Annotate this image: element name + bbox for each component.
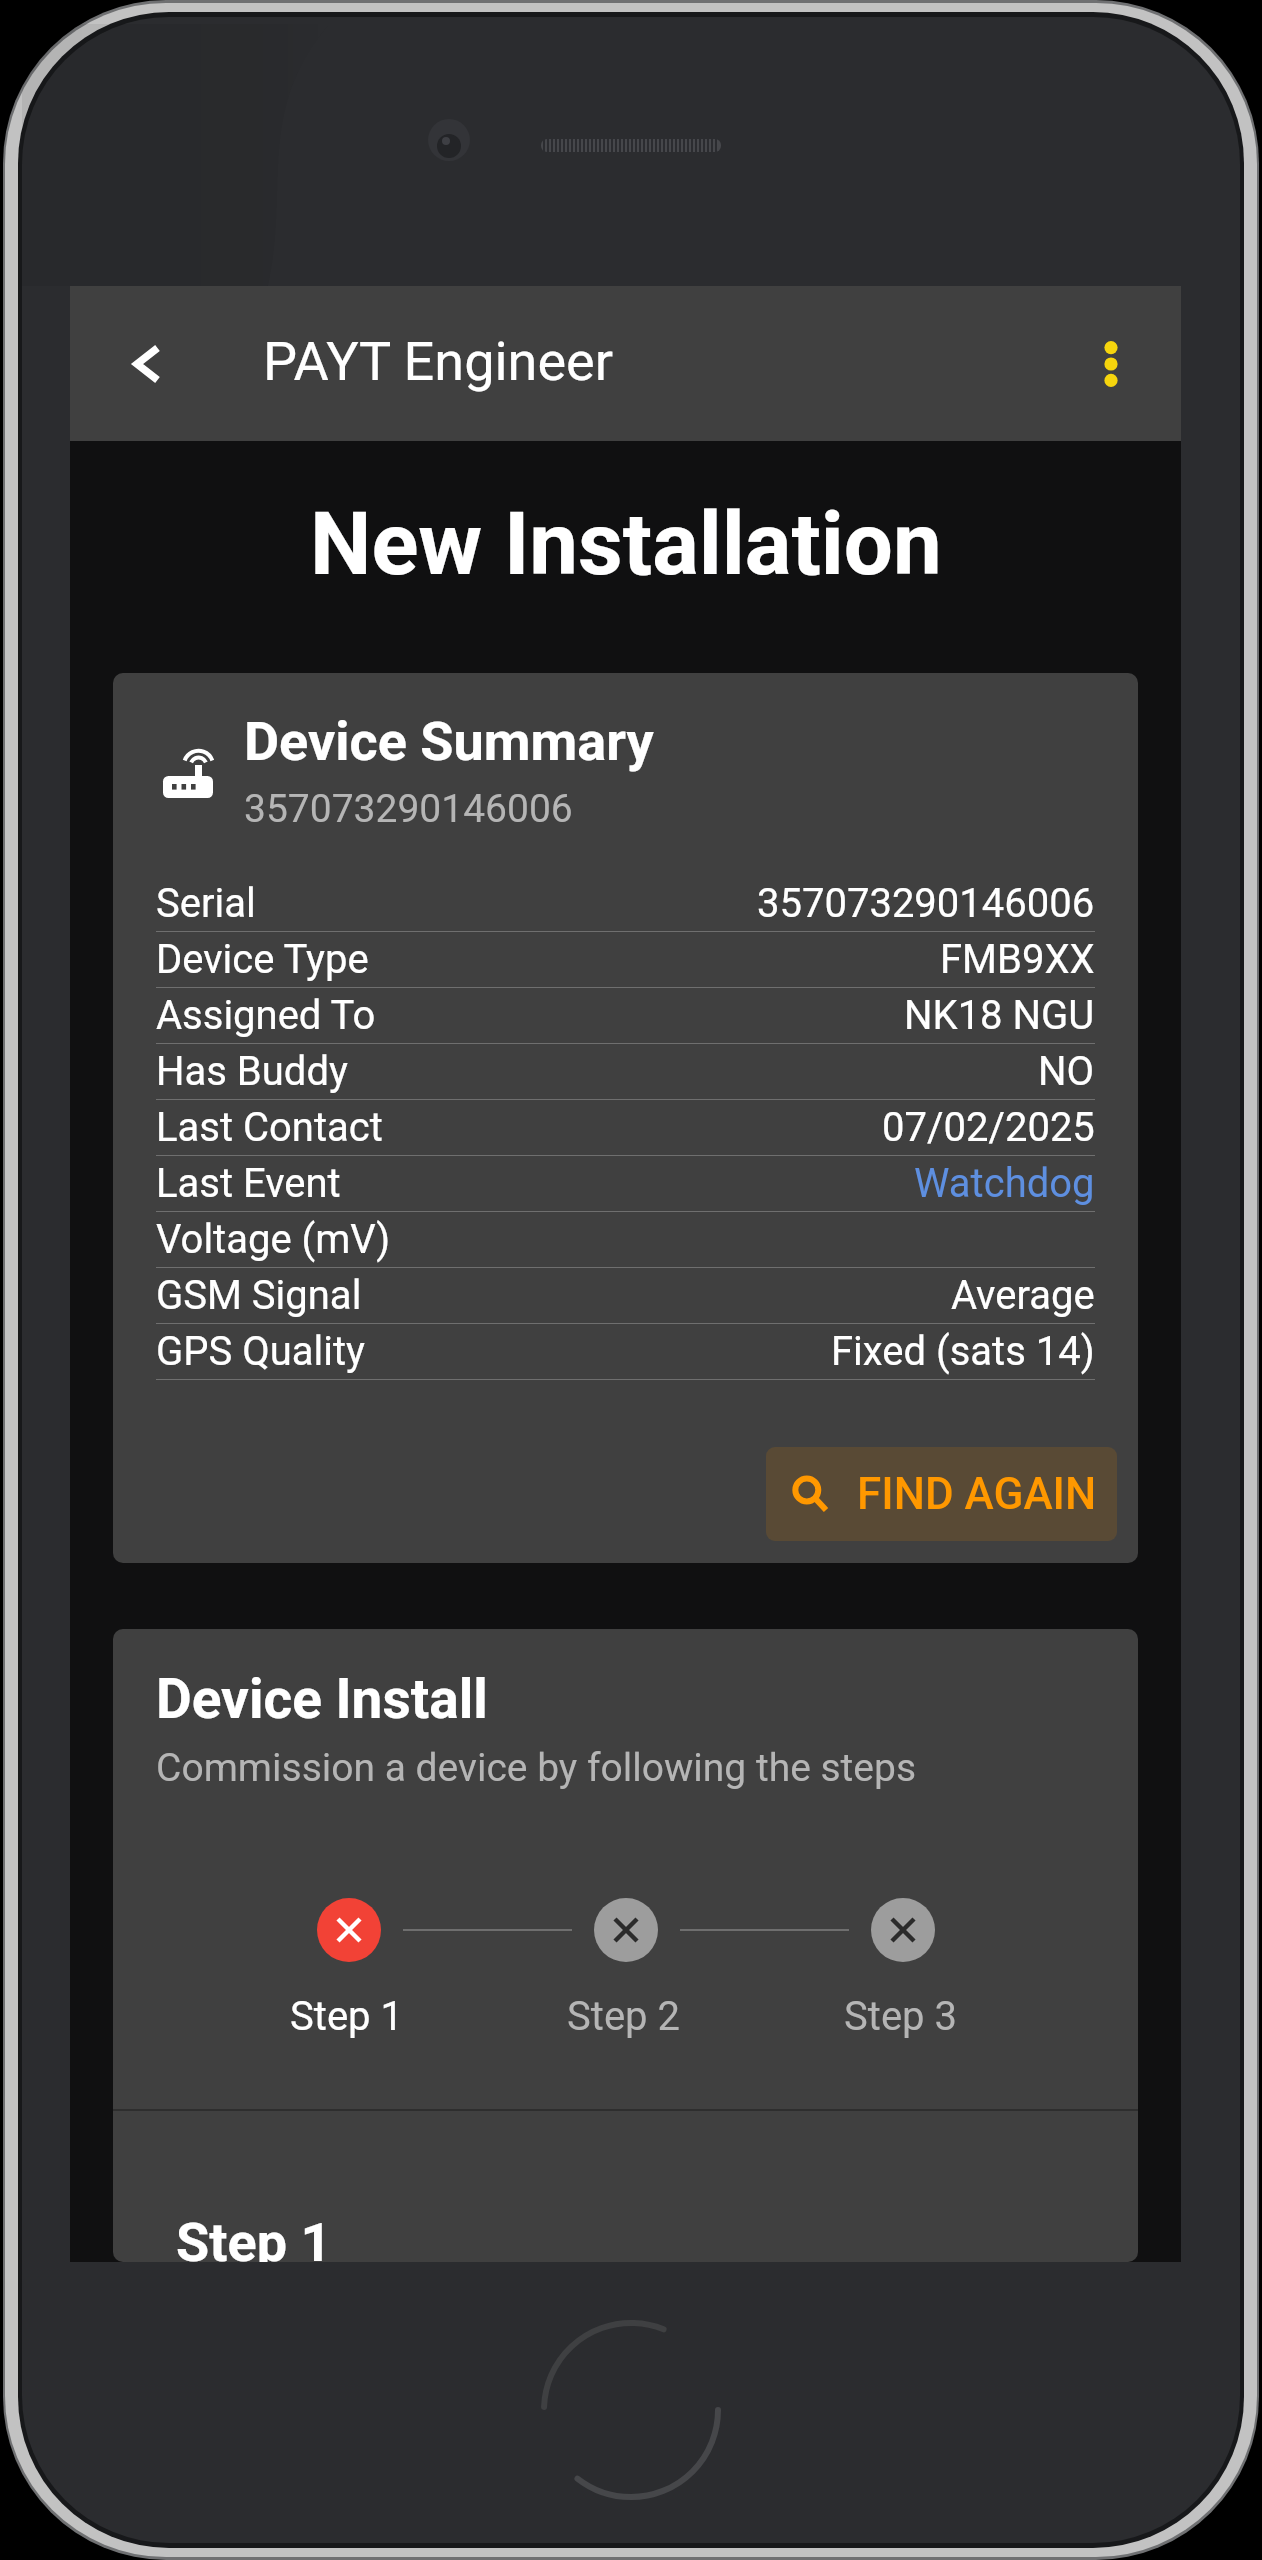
- button[interactable]: Step 1: [208, 1993, 485, 2040]
- staticText: Step 1: [176, 2211, 332, 2262]
- staticText: Fixed (sats 14): [831, 1328, 1095, 1375]
- staticText: Last Event: [156, 1160, 341, 1207]
- staticText: PAYT Engineer: [263, 330, 613, 393]
- staticText: FIND AGAIN: [857, 1468, 1097, 1520]
- button[interactable]: Step 1: [317, 1898, 381, 1962]
- button[interactable]: Back: [99, 316, 195, 412]
- staticText: Average: [951, 1272, 1095, 1319]
- staticText: Has Buddy: [156, 1048, 348, 1095]
- button[interactable]: Step 2: [594, 1898, 658, 1962]
- staticText: Voltage (mV): [156, 1216, 391, 1263]
- staticText: Device Type: [156, 936, 369, 983]
- staticText: NO: [1038, 1048, 1095, 1095]
- staticText: Watchdog: [914, 1160, 1095, 1207]
- button[interactable]: Step 2: [485, 1993, 762, 2040]
- button[interactable]: Step 3: [762, 1993, 1039, 2040]
- staticText: 357073290146006: [244, 786, 573, 832]
- staticText: Last Contact: [156, 1104, 383, 1151]
- staticText: Device Install: [156, 1667, 488, 1731]
- staticText: 357073290146006: [757, 880, 1095, 927]
- staticText: Device Summary: [244, 710, 654, 773]
- staticText: Assigned To: [156, 992, 376, 1039]
- staticText: FMB9XX: [940, 936, 1095, 983]
- button[interactable]: Watchdog: [914, 1160, 1095, 1207]
- staticText: Serial: [156, 880, 256, 927]
- staticText: GPS Quality: [156, 1328, 365, 1375]
- staticText: Commission a device by following the ste…: [156, 1745, 917, 1791]
- staticText: NK18 NGU: [904, 992, 1095, 1039]
- button[interactable]: Step 3: [871, 1898, 935, 1962]
- staticText: GSM Signal: [156, 1272, 362, 1319]
- button[interactable]: FIND AGAIN: [766, 1447, 1117, 1541]
- staticText: New Installation: [310, 493, 942, 595]
- staticText: 07/02/2025: [882, 1104, 1095, 1151]
- button[interactable]: More options: [1063, 316, 1159, 412]
